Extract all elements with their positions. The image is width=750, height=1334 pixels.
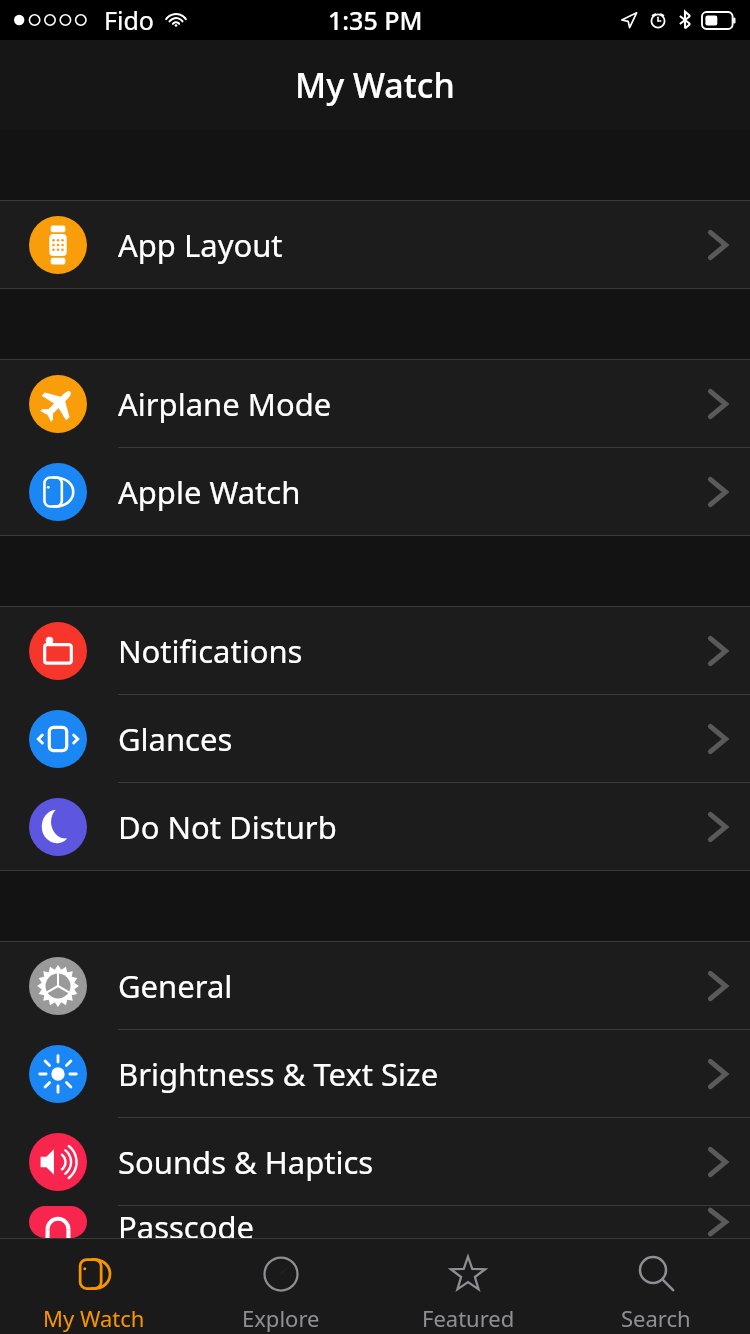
button[interactable]: App Layout <box>0 201 750 288</box>
button[interactable]: Brightness & Text Size <box>0 1030 750 1117</box>
button[interactable]: Apple Watch <box>0 448 750 535</box>
button[interactable]: My Watch <box>0 1239 187 1333</box>
staticText: Sounds & Haptics <box>118 1141 374 1183</box>
button[interactable]: Explore <box>187 1239 374 1333</box>
staticText: My Watch <box>43 1303 145 1333</box>
staticText: Brightness & Text Size <box>118 1053 439 1095</box>
button[interactable]: Sounds & Haptics <box>0 1118 750 1205</box>
staticText: Notifications <box>118 630 303 672</box>
button[interactable]: Notifications <box>0 607 750 694</box>
staticText: Explore <box>242 1303 320 1333</box>
staticText: Apple Watch <box>118 471 301 513</box>
staticText: Passcode <box>118 1206 255 1238</box>
button[interactable]: Passcode <box>0 1206 750 1238</box>
staticText: Glances <box>118 718 233 760</box>
staticText: General <box>118 965 233 1007</box>
staticText: Do Not Disturb <box>118 806 337 848</box>
staticText: Airplane Mode <box>118 383 332 425</box>
staticText: Fido <box>104 3 154 37</box>
staticText: App Layout <box>118 224 283 266</box>
button[interactable]: Do Not Disturb <box>0 783 750 870</box>
button[interactable]: Glances <box>0 695 750 782</box>
staticText: Search <box>621 1303 691 1333</box>
staticText: Featured <box>422 1303 515 1333</box>
button[interactable]: Featured <box>374 1239 562 1333</box>
button[interactable]: Search <box>562 1239 750 1333</box>
staticText: 1:35 PM <box>328 3 423 37</box>
staticText: My Watch <box>295 62 455 108</box>
button[interactable]: Airplane Mode <box>0 360 750 447</box>
button[interactable]: General <box>0 942 750 1029</box>
